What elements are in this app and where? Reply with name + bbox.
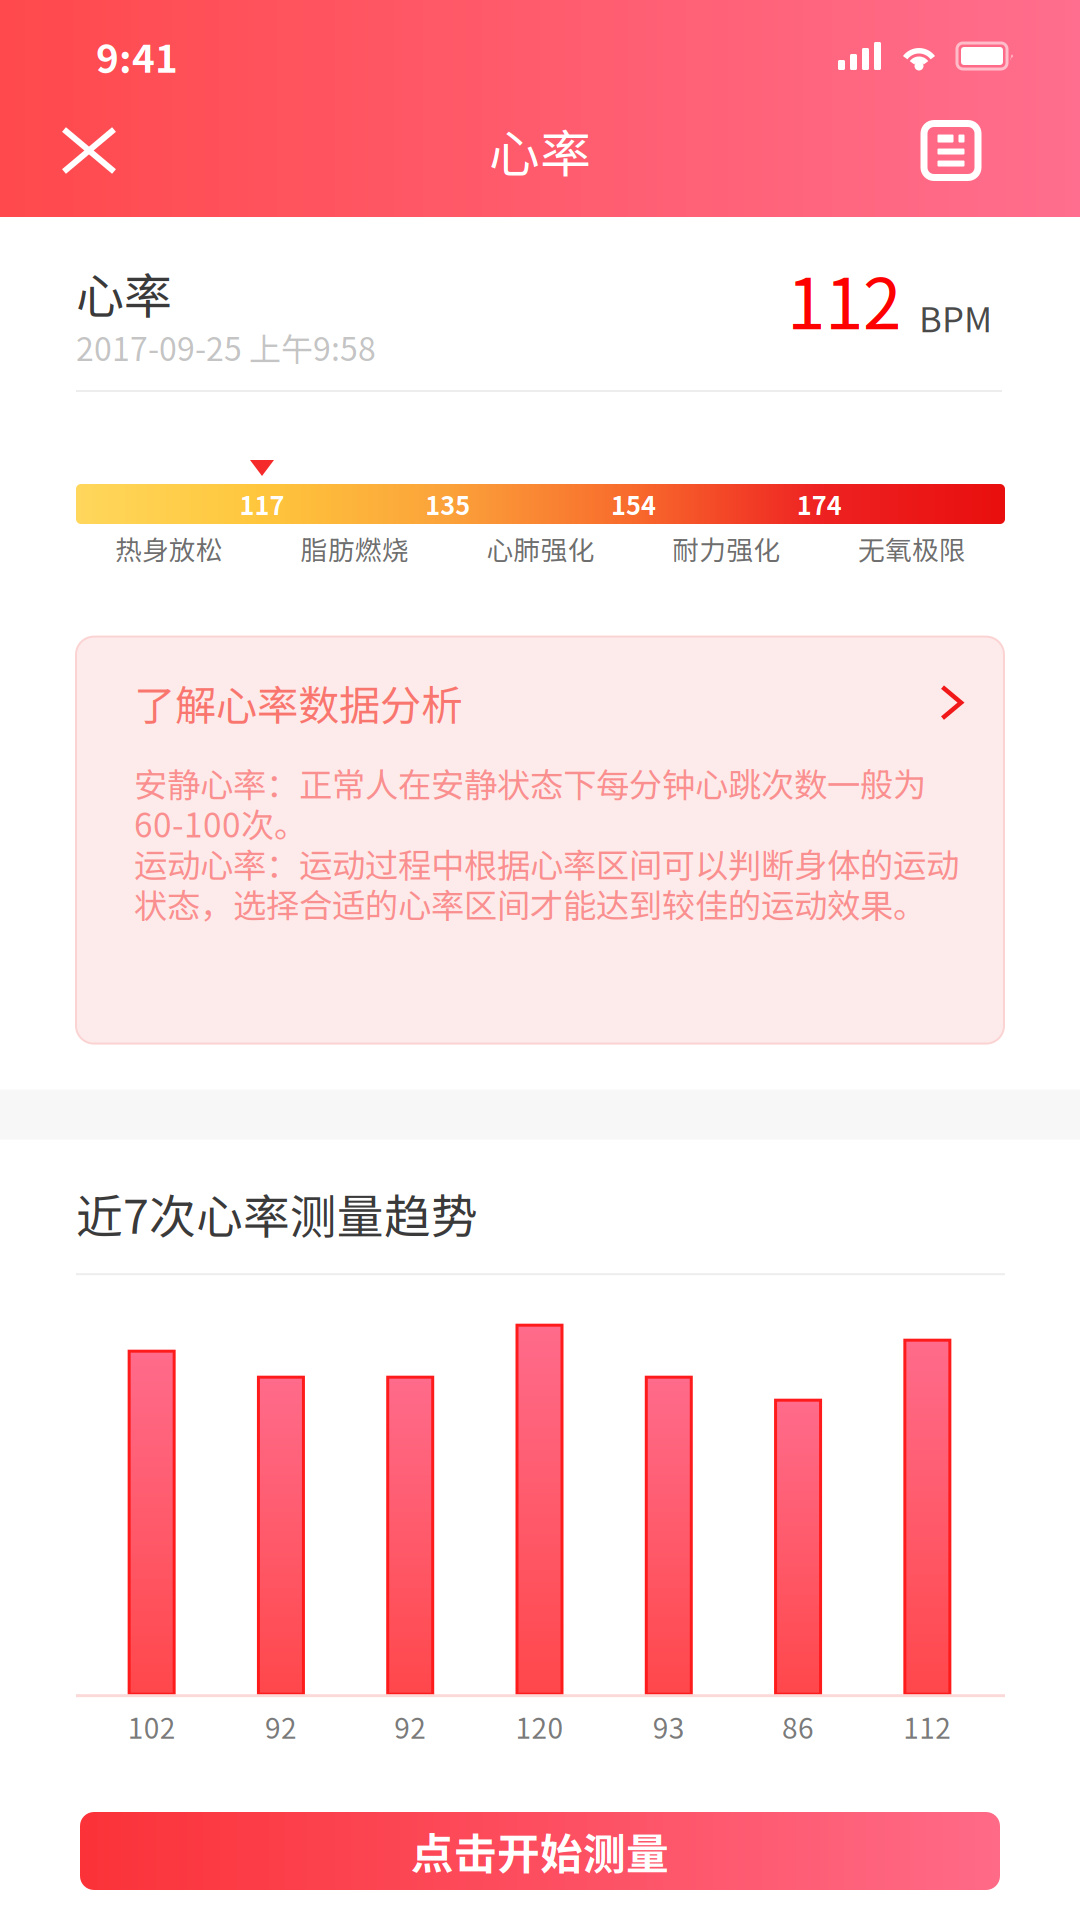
- staticText: 了解心率数据分析: [134, 673, 462, 733]
- staticText: 92: [265, 1706, 297, 1747]
- staticText: 117: [239, 486, 284, 522]
- staticText: 点击开始测量: [411, 1820, 669, 1882]
- staticText: 耐力强化: [672, 529, 780, 568]
- staticText: 脂肪燃烧: [301, 529, 409, 568]
- staticText: 112: [787, 249, 901, 349]
- staticText: 心率: [76, 258, 172, 327]
- staticText: 154: [611, 486, 656, 522]
- staticText: 93: [653, 1706, 685, 1747]
- button[interactable]: 了解心率数据分析: [76, 637, 1004, 1044]
- staticText: 心肺强化: [486, 529, 594, 568]
- staticText: 无氧极限: [858, 529, 966, 568]
- staticText: 92: [394, 1706, 426, 1747]
- staticText: 102: [128, 1706, 176, 1747]
- staticText: 安静心率：正常人在安静状态下每分钟心跳次数一般为60-100次。 运动心率：运动…: [134, 759, 959, 928]
- staticText: 135: [425, 486, 470, 522]
- staticText: 9:41: [96, 28, 178, 84]
- staticText: 热身放松: [115, 529, 223, 568]
- button[interactable]: Close: [32, 88, 146, 213]
- staticText: 120: [515, 1706, 563, 1747]
- staticText: 174: [797, 486, 842, 522]
- staticText: 近7次心率测量趋势: [76, 1180, 478, 1247]
- staticText: 112: [903, 1706, 951, 1747]
- staticText: 心率: [489, 114, 591, 187]
- staticText: 2017-09-25 上午9:58: [76, 324, 376, 370]
- button[interactable]: Records: [894, 88, 1008, 213]
- staticText: 86: [782, 1706, 814, 1747]
- button[interactable]: 点击开始测量: [80, 1812, 1000, 1890]
- staticText: BPM: [919, 292, 992, 342]
